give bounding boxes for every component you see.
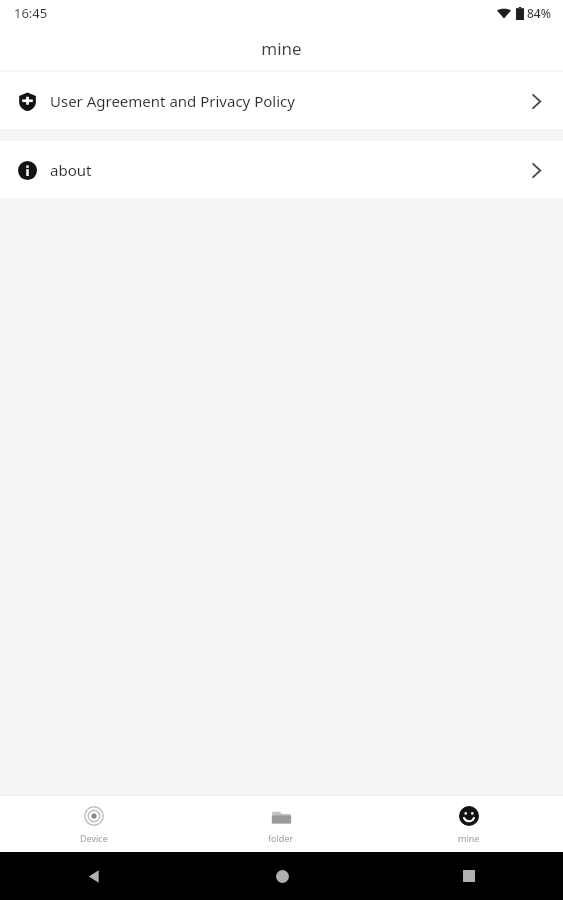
button[interactable]: Device: [39, 796, 149, 852]
staticText: about: [50, 160, 92, 180]
button[interactable]: Recent apps: [445, 852, 493, 900]
button[interactable]: mine: [414, 796, 524, 852]
staticText: Device: [80, 832, 108, 844]
button[interactable]: Home: [258, 852, 306, 900]
button[interactable]: about: [0, 141, 563, 198]
staticText: 84%: [527, 5, 551, 21]
staticText: folder: [268, 832, 294, 844]
staticText: mine: [261, 37, 302, 60]
staticText: mine: [458, 832, 480, 844]
staticText: User Agreement and Privacy Policy: [50, 91, 295, 111]
button[interactable]: folder: [226, 796, 336, 852]
staticText: 16:45: [14, 4, 48, 22]
button[interactable]: Back: [70, 852, 118, 900]
button[interactable]: User Agreement and Privacy Policy: [0, 72, 563, 129]
